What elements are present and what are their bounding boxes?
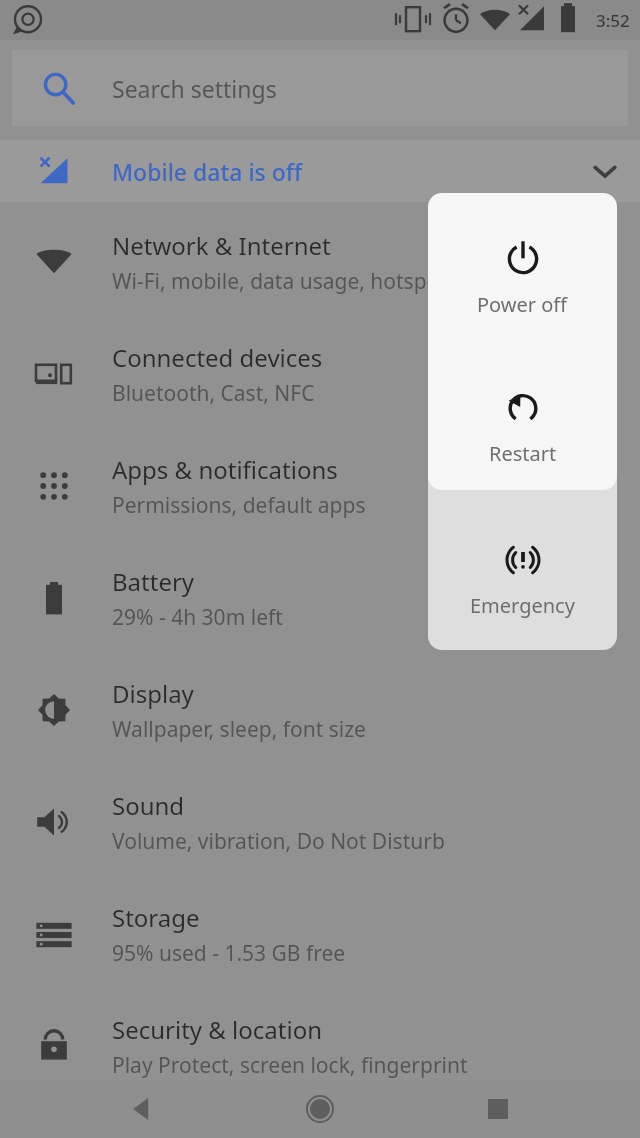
staticText: Display xyxy=(112,677,194,710)
button[interactable]: Security & location xyxy=(0,990,640,1102)
staticText: Security & location xyxy=(112,1013,323,1046)
staticText: Wi-Fi, mobile, data usage, hotspot xyxy=(112,267,447,296)
staticText: Battery xyxy=(112,565,195,598)
staticText: Restart xyxy=(489,440,557,467)
button[interactable]: Power off xyxy=(428,193,617,341)
staticText: Volume, vibration, Do Not Disturb xyxy=(112,827,445,856)
button[interactable]: Restart xyxy=(428,341,617,490)
staticText: Sound xyxy=(112,789,185,822)
button[interactable]: Emergency xyxy=(428,490,617,650)
staticText: 29% - 4h 30m left xyxy=(112,603,283,632)
button[interactable]: Back xyxy=(118,1085,166,1133)
staticText: Power off xyxy=(477,291,568,318)
staticText: Connected devices xyxy=(112,341,323,374)
button[interactable]: Network & Internet xyxy=(0,206,640,318)
button[interactable]: Battery xyxy=(0,542,640,654)
staticText: Network & Internet xyxy=(112,229,331,262)
button[interactable]: Recent apps xyxy=(474,1085,522,1133)
staticText: Play Protect, screen lock, fingerprint xyxy=(112,1051,468,1080)
staticText: Storage xyxy=(112,901,200,934)
staticText: 95% used - 1.53 GB free xyxy=(112,939,346,968)
button[interactable]: Storage xyxy=(0,878,640,990)
button[interactable]: Apps & notifications xyxy=(0,430,640,542)
staticText: Emergency xyxy=(470,592,575,619)
button[interactable]: Mobile data is off xyxy=(0,140,640,202)
staticText: Mobile data is off xyxy=(112,156,303,187)
staticText: Permissions, default apps xyxy=(112,491,366,520)
staticText: 3:52 xyxy=(596,9,630,32)
button[interactable]: Search settings xyxy=(12,50,628,126)
staticText: Search settings xyxy=(112,73,277,104)
button[interactable]: Display xyxy=(0,654,640,766)
button[interactable]: Home xyxy=(294,1083,346,1135)
button[interactable]: Sound xyxy=(0,766,640,878)
staticText: Bluetooth, Cast, NFC xyxy=(112,379,315,408)
staticText: Apps & notifications xyxy=(112,453,338,486)
staticText: Wallpaper, sleep, font size xyxy=(112,715,366,744)
button[interactable]: Connected devices xyxy=(0,318,640,430)
